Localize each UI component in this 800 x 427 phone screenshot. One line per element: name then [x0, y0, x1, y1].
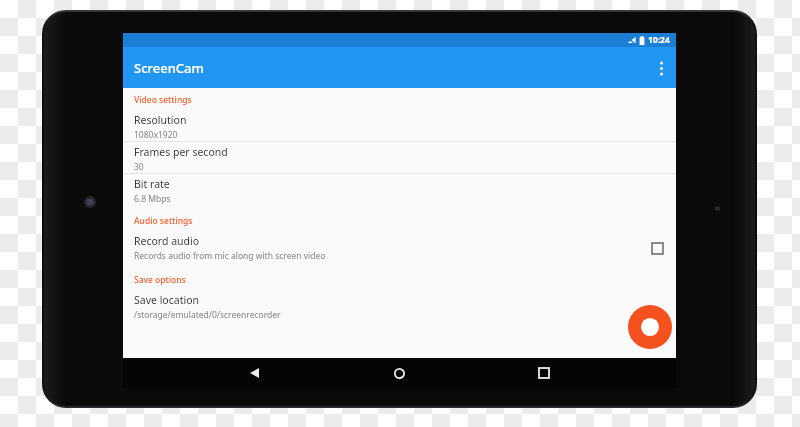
staticText: 30: [134, 161, 144, 173]
button[interactable]: Bit rate: [123, 174, 676, 205]
button[interactable]: Save location: [123, 290, 676, 321]
button[interactable]: Home: [386, 360, 412, 386]
staticText: ScreenCam: [134, 59, 204, 77]
button[interactable]: Resolution: [123, 110, 676, 141]
staticText: Record audio: [134, 234, 200, 248]
staticText: Audio settings: [134, 215, 193, 227]
staticText: 1080x1920: [134, 129, 178, 141]
staticText: Records audio from mic along with screen…: [134, 250, 326, 262]
button[interactable]: More options: [646, 53, 676, 83]
staticText: Frames per second: [134, 145, 228, 159]
button[interactable]: Frames per second: [123, 142, 676, 173]
staticText: 10:24: [648, 34, 670, 46]
button[interactable]: Recent apps: [531, 360, 557, 386]
staticText: Resolution: [134, 113, 187, 127]
staticText: Save options: [134, 274, 186, 286]
staticText: /storage/emulated/0/screenrecorder: [134, 309, 281, 321]
staticText: 6.8 Mbps: [134, 193, 171, 205]
button[interactable]: Back: [241, 360, 267, 386]
staticText: Video settings: [134, 94, 192, 106]
staticText: Save location: [134, 293, 199, 307]
button[interactable]: Start recording: [628, 305, 672, 349]
staticText: Bit rate: [134, 177, 170, 191]
button[interactable]: Record audio: [123, 231, 676, 264]
